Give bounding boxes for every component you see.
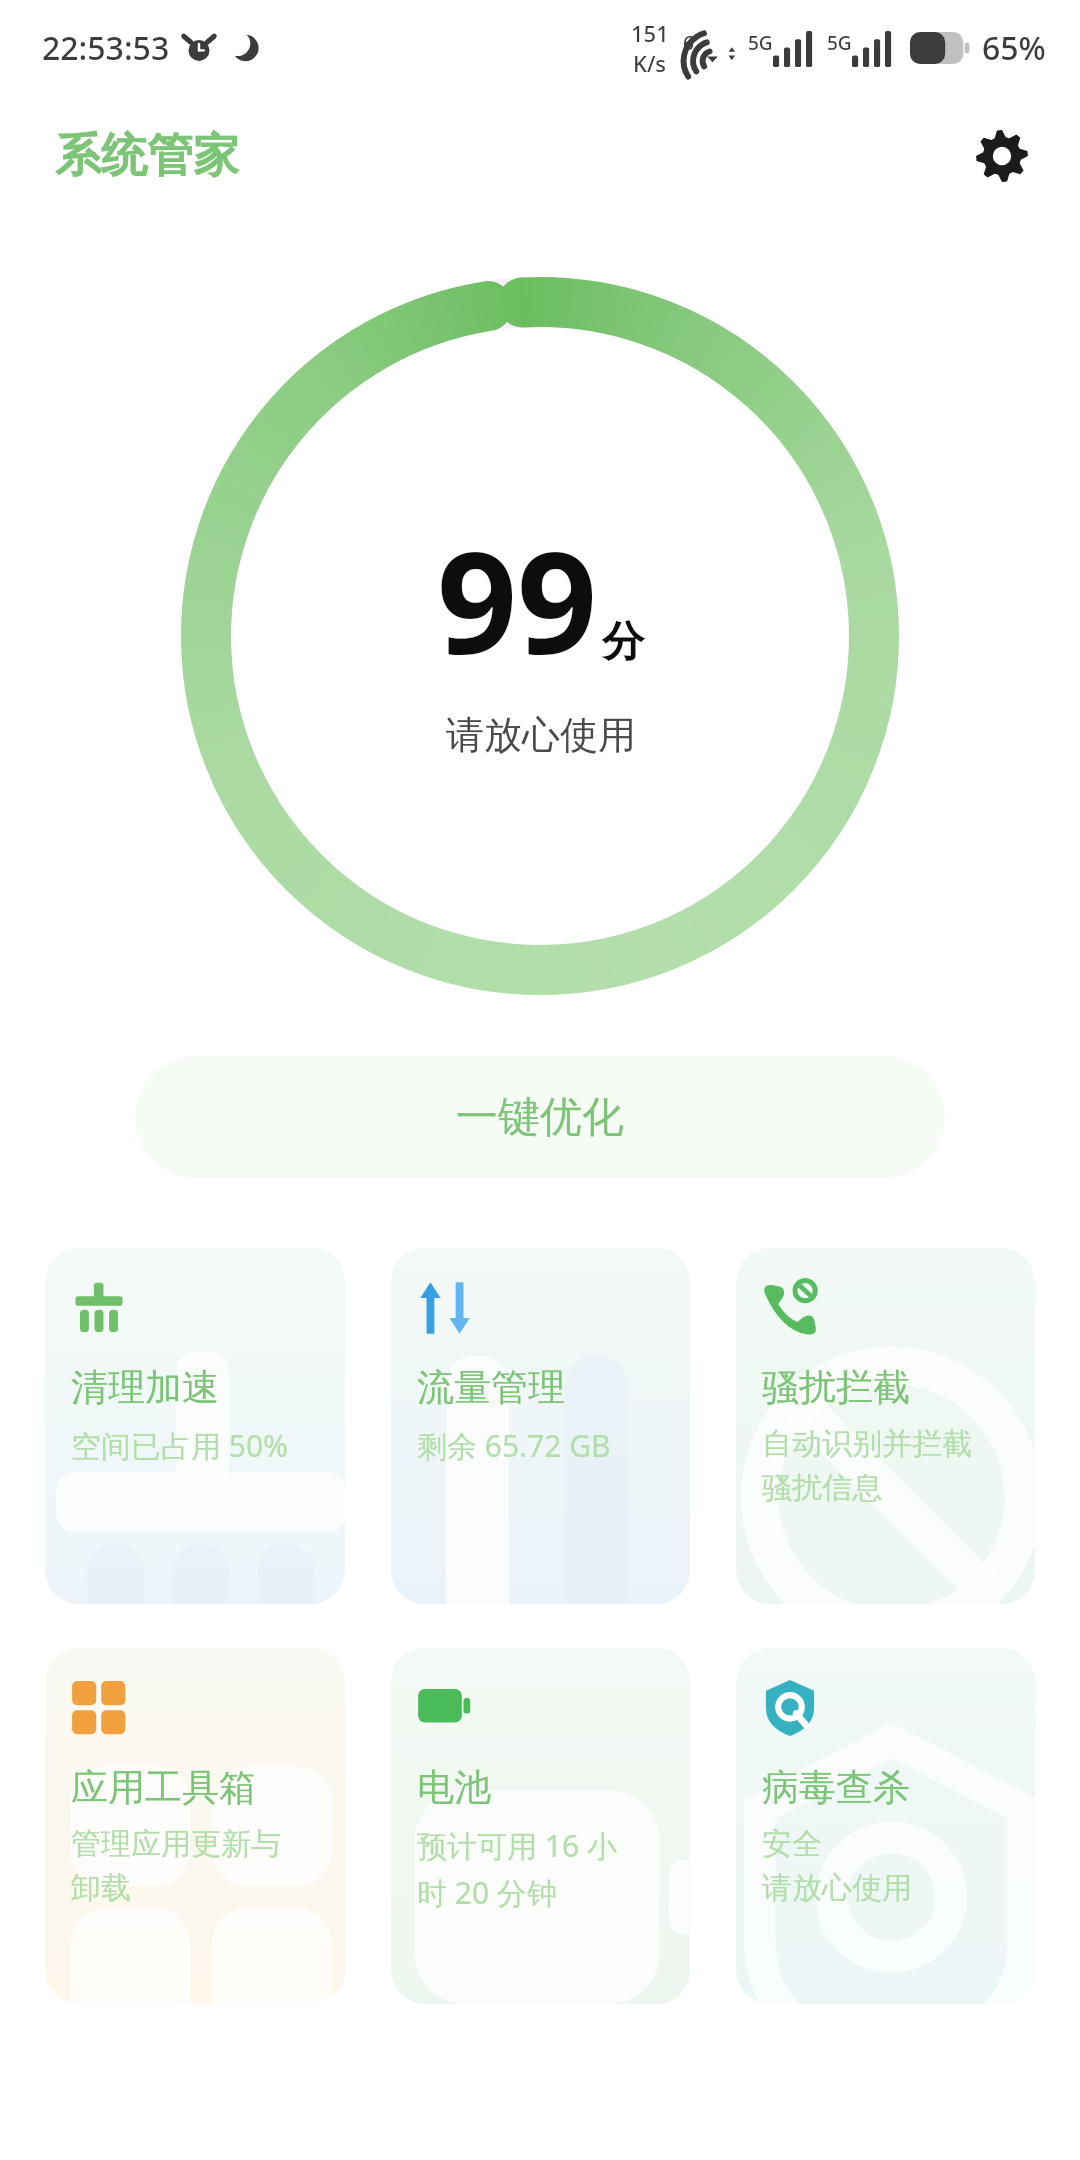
button[interactable]: 应用工具箱: [45, 1648, 345, 2004]
button[interactable]: 病毒查杀: [736, 1648, 1035, 2004]
staticText: 剩余 65.72 GB: [417, 1425, 611, 1466]
staticText: 骚扰信息: [762, 1469, 882, 1507]
staticText: 5G: [827, 30, 852, 56]
staticText: 管理应用更新与: [71, 1825, 281, 1863]
staticText: 请放心使用: [762, 1869, 912, 1907]
button[interactable]: 骚扰拦截: [736, 1248, 1035, 1604]
staticText: 分: [602, 616, 644, 669]
staticText: 65%: [982, 26, 1046, 70]
staticText: 99: [437, 504, 598, 695]
staticText: 时 20 分钟: [417, 1872, 557, 1913]
staticText: 病毒查杀: [762, 1764, 910, 1811]
staticText: 卸载: [71, 1869, 131, 1907]
staticText: 骚扰拦截: [762, 1364, 910, 1411]
staticText: 请放心使用: [446, 711, 636, 759]
staticText: 151: [631, 18, 669, 48]
staticText: 系统管家: [55, 127, 239, 185]
staticText: 安全: [762, 1825, 822, 1863]
button[interactable]: Settings: [966, 120, 1038, 192]
staticText: 5G: [748, 30, 773, 56]
staticText: 预计可用 16 小: [417, 1825, 617, 1866]
staticText: 22:53:53: [42, 26, 170, 70]
staticText: 空间已占用 50%: [71, 1425, 289, 1466]
button[interactable]: 清理加速: [45, 1248, 345, 1604]
staticText: 清理加速: [71, 1364, 219, 1411]
staticText: 6: [683, 30, 694, 56]
staticText: 应用工具箱: [71, 1764, 256, 1811]
button[interactable]: 电池: [391, 1648, 690, 2004]
staticText: 电池: [417, 1764, 491, 1811]
button[interactable]: 流量管理: [391, 1248, 690, 1604]
staticText: 自动识别并拦截: [762, 1425, 972, 1463]
staticText: 流量管理: [417, 1364, 565, 1411]
button[interactable]: 一键优化: [135, 1056, 945, 1178]
staticText: K/s: [633, 48, 667, 78]
staticText: 一键优化: [456, 1091, 624, 1144]
